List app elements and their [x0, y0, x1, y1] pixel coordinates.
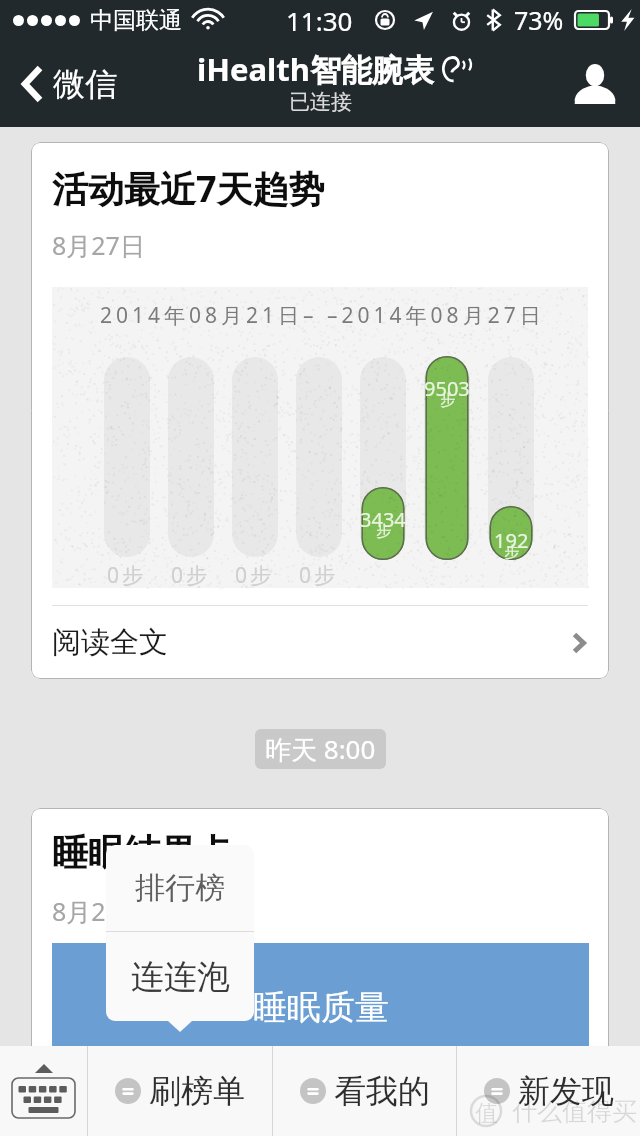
- staticText: 阅读全文: [52, 624, 168, 661]
- staticText: 值: [475, 1099, 498, 1128]
- staticText: 排行榜: [135, 869, 225, 907]
- staticText: 刷榜单: [149, 1071, 245, 1111]
- staticText: 步: [440, 391, 455, 410]
- staticText: 192: [494, 527, 529, 554]
- staticText: 睡眠质量: [253, 986, 389, 1029]
- button[interactable]: 连连泡: [106, 932, 254, 1021]
- staticText: 什么值得买: [512, 1096, 637, 1127]
- button[interactable]: 排行榜: [106, 845, 254, 931]
- staticText: 0步: [235, 561, 275, 590]
- staticText: 新发现: [518, 1071, 614, 1111]
- staticText: iHealth智能腕表: [197, 48, 434, 90]
- button[interactable]: 看我的: [273, 1046, 456, 1136]
- staticText: 3434: [360, 506, 406, 533]
- staticText: 微信: [53, 64, 117, 104]
- staticText: 睡眠结果卡: [52, 830, 232, 875]
- staticText: 步: [376, 522, 391, 541]
- staticText: 9503: [424, 375, 470, 402]
- button[interactable]: 新发现: [457, 1046, 640, 1136]
- staticText: 已连接: [289, 89, 352, 115]
- button[interactable]: 睡眠结果卡: [31, 808, 609, 1068]
- button[interactable]: 阅读全文: [31, 606, 609, 679]
- button[interactable]: Profile: [550, 40, 640, 127]
- button[interactable]: 活动最近7天趋势: [31, 142, 609, 679]
- staticText: 昨天 8:00: [265, 731, 376, 767]
- staticText: 连连泡: [131, 956, 230, 998]
- staticText: 0步: [171, 561, 211, 590]
- staticText: 中国联通: [90, 6, 182, 35]
- staticText: 2014年08月21日– –2014年08月27日: [100, 301, 545, 330]
- staticText: 8月27日: [52, 894, 145, 928]
- staticText: 11:30: [286, 3, 353, 38]
- button[interactable]: Keyboard: [0, 1046, 87, 1136]
- staticText: 活动最近7天趋势: [52, 164, 325, 213]
- staticText: 0步: [299, 561, 339, 590]
- staticText: 看我的: [334, 1071, 430, 1111]
- staticText: 8月27日: [52, 228, 145, 262]
- staticText: 73%: [514, 3, 564, 37]
- staticText: 步: [504, 543, 519, 562]
- button[interactable]: 微信: [0, 40, 133, 127]
- button[interactable]: 刷榜单: [88, 1046, 272, 1136]
- staticText: 0步: [107, 561, 147, 590]
